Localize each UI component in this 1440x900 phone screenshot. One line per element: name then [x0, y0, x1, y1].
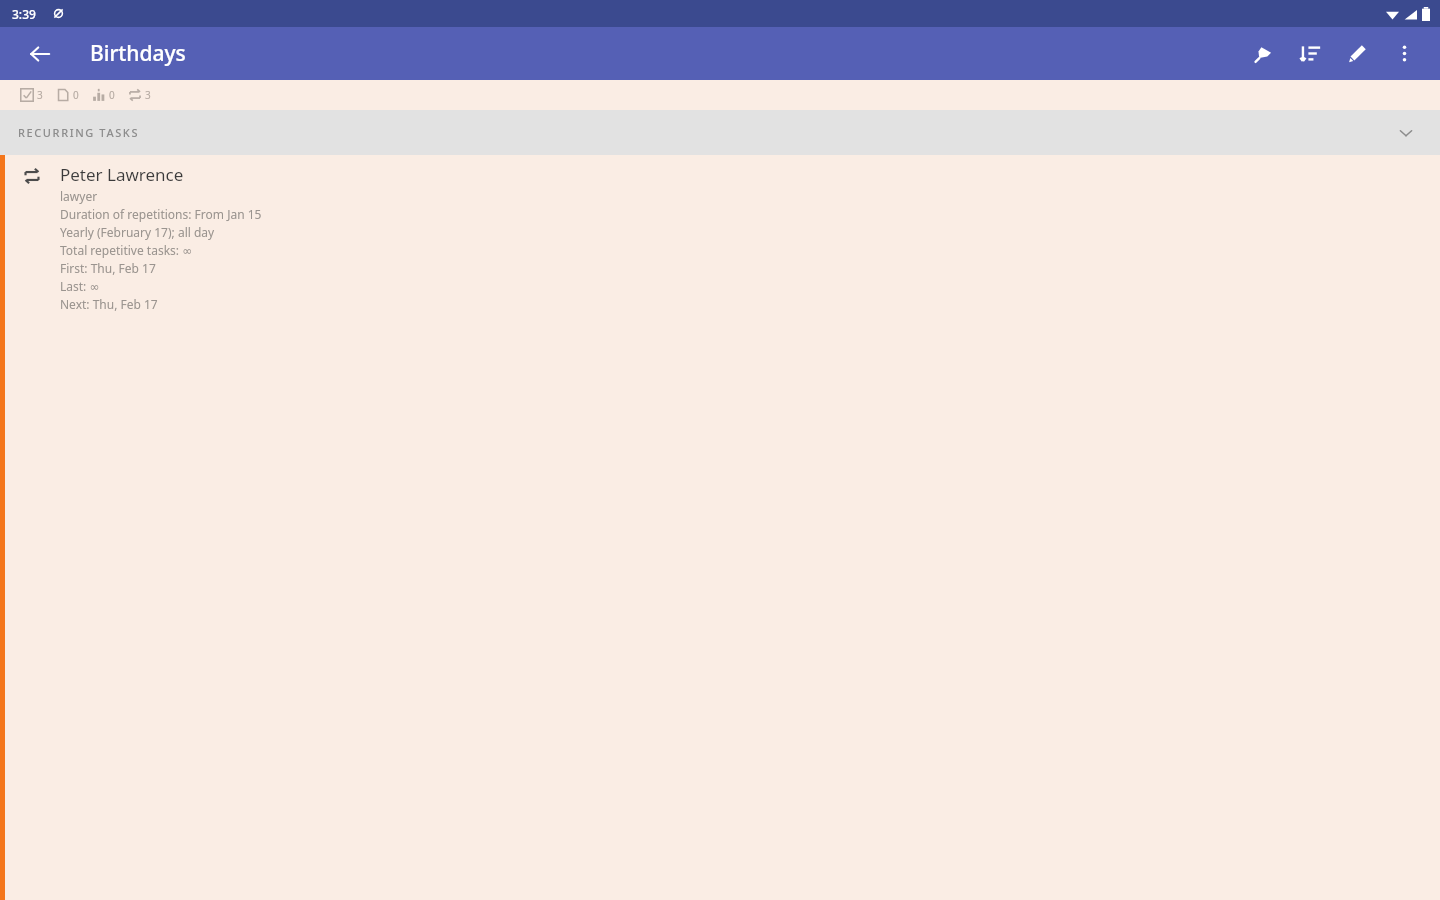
staticText: 0 [73, 88, 79, 102]
staticText: First: Thu, Feb 17 [60, 260, 156, 276]
button[interactable]: Edit [1334, 30, 1381, 77]
staticText: Last: ∞ [60, 278, 100, 294]
button[interactable]: RECURRING TASKS [0, 110, 1440, 155]
button[interactable]: Pin [1240, 30, 1287, 77]
staticText: Yearly (February 17); all day [60, 224, 215, 240]
staticText: RECURRING TASKS [18, 125, 1394, 140]
staticText: 0 [109, 88, 115, 102]
staticText: Duration of repetitions: From Jan 15 [60, 206, 262, 222]
button[interactable]: More options [1381, 30, 1428, 77]
staticText: lawyer [60, 188, 98, 204]
staticText: Peter Lawrence [60, 163, 184, 186]
button[interactable]: Sort [1287, 30, 1334, 77]
button[interactable]: Back [18, 32, 62, 76]
staticText: Birthdays [90, 39, 186, 68]
staticText: 3 [37, 88, 43, 102]
staticText: 3 [145, 88, 151, 102]
staticText: 3:39 [12, 6, 36, 22]
staticText: Total repetitive tasks: ∞ [60, 242, 193, 258]
button[interactable]: Peter Lawrence [0, 155, 1440, 900]
staticText: Next: Thu, Feb 17 [60, 296, 158, 312]
